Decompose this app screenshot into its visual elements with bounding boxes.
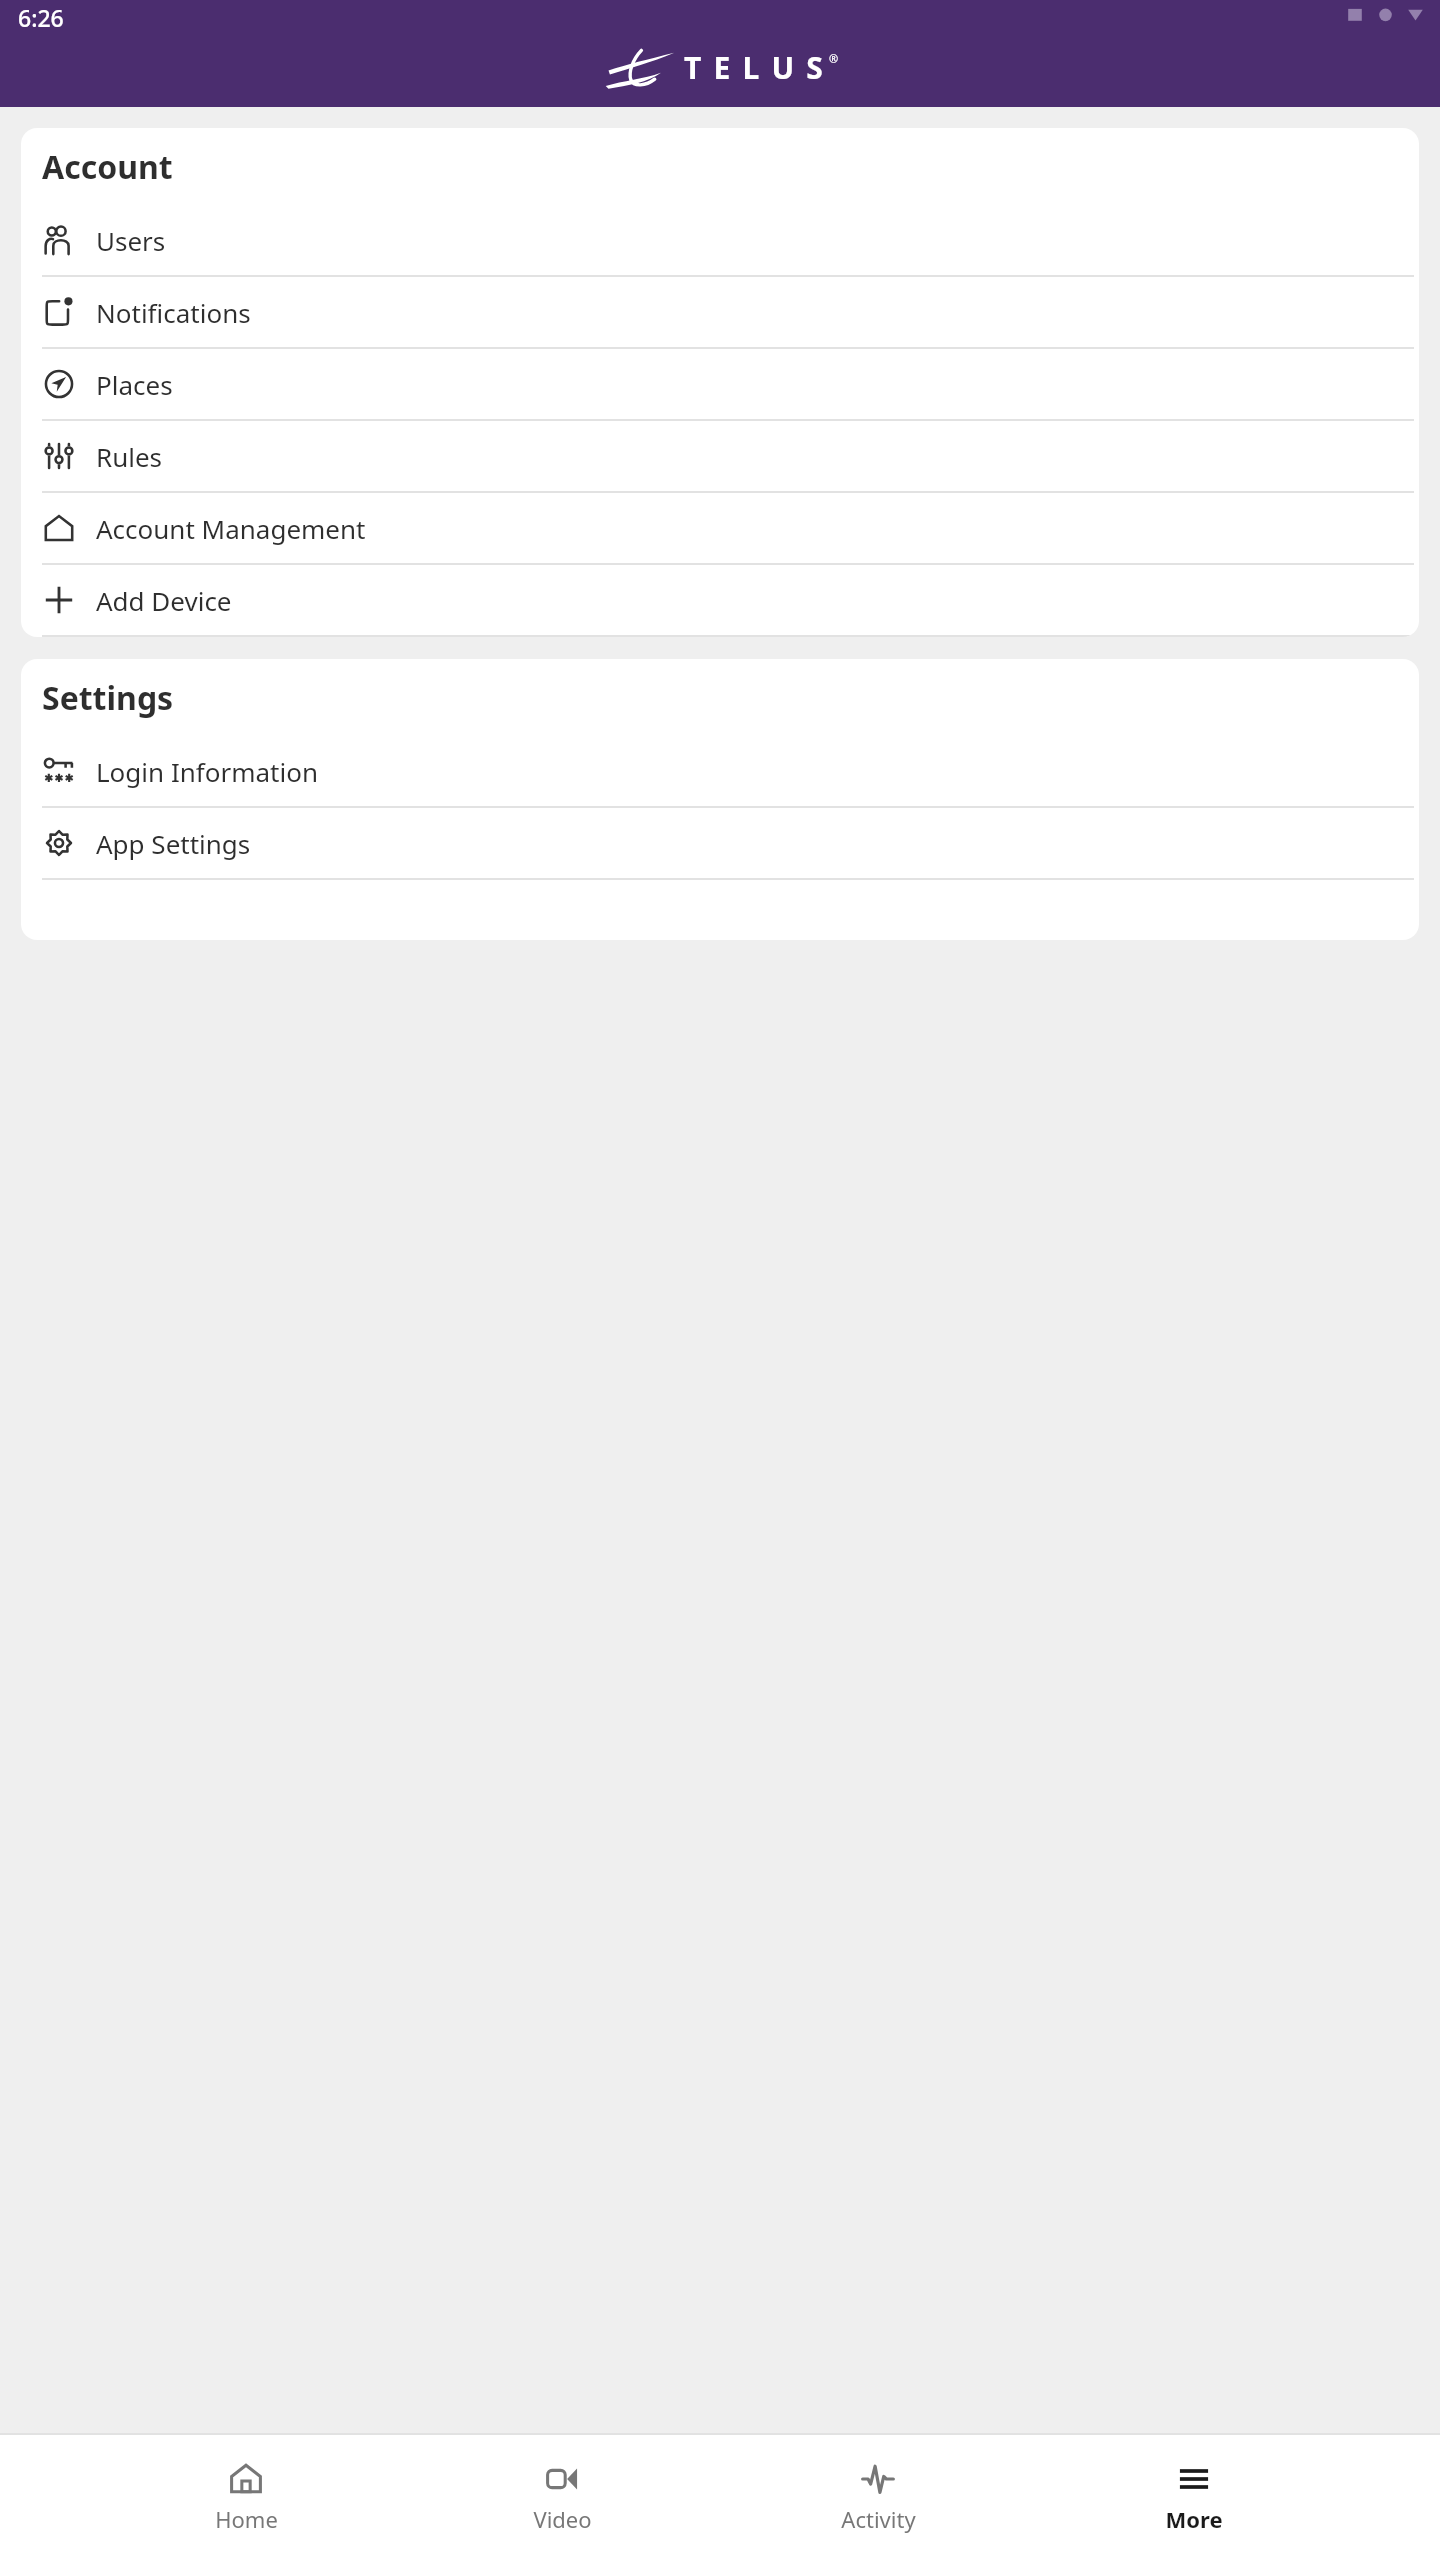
button[interactable]: Account Management: [21, 493, 1419, 563]
button[interactable]: Notifications: [21, 277, 1419, 347]
staticText: Home: [215, 2504, 278, 2534]
staticText: App Settings: [96, 826, 251, 861]
staticText: Add Device: [96, 583, 232, 618]
button[interactable]: Home: [176, 2456, 316, 2540]
staticText: ®: [829, 51, 839, 66]
staticText: Account Management: [96, 511, 366, 546]
button[interactable]: More: [1124, 2456, 1264, 2540]
staticText: Account: [42, 145, 173, 189]
button[interactable]: Login Information: [21, 736, 1419, 806]
button[interactable]: Users: [21, 205, 1419, 275]
staticText: Notifications: [96, 295, 251, 330]
button[interactable]: Rules: [21, 421, 1419, 491]
button[interactable]: Add Device: [21, 565, 1419, 635]
staticText: Activity: [841, 2504, 916, 2534]
staticText: Users: [96, 223, 166, 258]
staticText: Places: [96, 367, 173, 402]
staticText: 6:26: [18, 2, 64, 33]
staticText: Rules: [96, 439, 163, 474]
staticText: Login Information: [96, 754, 318, 789]
staticText: More: [1165, 2504, 1223, 2534]
staticText: Settings: [42, 676, 174, 720]
button[interactable]: Activity: [808, 2456, 948, 2540]
button[interactable]: Places: [21, 349, 1419, 419]
staticText: T E L U S: [684, 47, 826, 88]
button[interactable]: App Settings: [21, 808, 1419, 878]
staticText: Video: [533, 2504, 592, 2534]
button[interactable]: Video: [492, 2456, 632, 2540]
